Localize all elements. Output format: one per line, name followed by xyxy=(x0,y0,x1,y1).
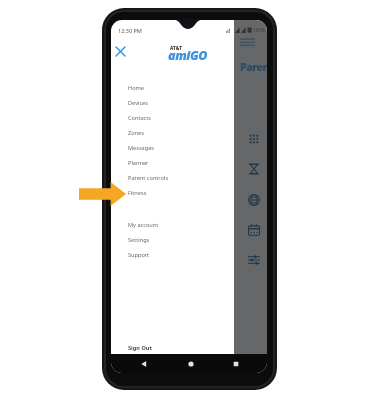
button[interactable]: Recents xyxy=(229,357,243,371)
staticText: Home xyxy=(128,84,144,92)
button[interactable]: Parent controls xyxy=(111,170,267,185)
button[interactable]: Close menu xyxy=(112,43,129,60)
button[interactable]: Planner xyxy=(246,222,262,238)
staticText: Planner xyxy=(128,159,149,167)
button[interactable]: Screen time xyxy=(246,161,262,177)
staticText: My account xyxy=(128,221,159,229)
staticText: Fitness xyxy=(128,189,147,197)
button[interactable]: Messages xyxy=(111,140,267,155)
button[interactable]: Planner xyxy=(111,155,267,170)
button[interactable]: Apps xyxy=(246,131,262,147)
staticText: Parent xyxy=(240,60,267,74)
button[interactable]: Open navigation menu xyxy=(240,38,255,47)
button[interactable]: Support xyxy=(111,247,267,262)
staticText: 100% xyxy=(253,27,265,33)
button[interactable]: Sign Out xyxy=(111,339,267,357)
staticText: Zones xyxy=(128,129,144,137)
staticText: Support xyxy=(128,251,150,259)
button[interactable]: Home xyxy=(111,80,267,95)
staticText: 12:30 PM xyxy=(118,27,142,34)
staticText: Contacts xyxy=(128,114,151,122)
button[interactable]: Contacts xyxy=(111,110,267,125)
staticText: AT&T xyxy=(170,45,183,51)
other: Screen time xyxy=(248,163,260,175)
button[interactable]: My account xyxy=(111,217,267,232)
button[interactable]: Settings xyxy=(111,232,267,247)
button[interactable]: Fitness xyxy=(111,185,267,200)
button[interactable]: Devices xyxy=(111,95,267,110)
button[interactable]: Controls xyxy=(246,252,262,268)
other: Explore xyxy=(248,194,260,206)
staticText: Messages xyxy=(128,144,154,152)
staticText: Devices xyxy=(128,99,148,107)
staticText: amiGO xyxy=(168,47,208,64)
button[interactable]: Back xyxy=(137,357,151,371)
button[interactable]: Explore xyxy=(246,192,262,208)
button[interactable]: Zones xyxy=(111,125,267,140)
staticText: Parent controls xyxy=(128,174,169,182)
other: Apps xyxy=(249,134,259,144)
other: Planner xyxy=(248,224,260,236)
staticText: Settings xyxy=(128,236,150,244)
staticText: Sign Out xyxy=(128,344,152,352)
button[interactable]: Home xyxy=(184,357,198,371)
other: Controls xyxy=(248,254,260,266)
